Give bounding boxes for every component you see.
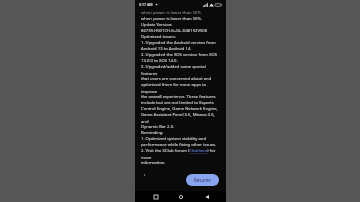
staticText: Game Assistant Panel 3.6, Mirana 3.6, an… (141, 112, 220, 124)
staticText: 3. Upgraded/added some special features (141, 64, 220, 76)
staticText: Optimized issues: (141, 34, 176, 40)
staticText: when power is lower than 50%. (141, 10, 203, 16)
staticText: Control Engine, Game Network Engine, (141, 106, 218, 112)
button[interactable]: Resume (186, 174, 219, 186)
staticText: the overall experience. These features (141, 94, 216, 100)
button[interactable]: Recent apps (150, 191, 161, 202)
button[interactable]: Back (201, 191, 212, 202)
staticText: include but are not limited to Esports (141, 100, 214, 106)
staticText: 1. Upgraded the Android version from (141, 40, 216, 46)
staticText: 13.0.0 to XOS 14.0. (141, 58, 178, 64)
staticText: that users are concerned about and (141, 76, 212, 82)
staticText: 1. Optimized system stability and (141, 136, 206, 142)
staticText: Android 13 to Android 14. (141, 46, 192, 52)
staticText: Dynamic Bar 2.0. (141, 124, 175, 130)
staticText: 2. Visit the XClub forum (Clickhere) for… (141, 148, 220, 160)
staticText: Resume (194, 177, 211, 183)
staticText: information. (141, 160, 166, 166)
staticText: Update Version: (141, 22, 173, 28)
staticText: when power is lower than 50%. (141, 16, 203, 22)
button[interactable]: Home (175, 191, 186, 202)
staticText: optimized them for more apps to improve (141, 82, 220, 94)
staticText: 86739.H501CH.6+GL.D48192V508 (141, 28, 208, 34)
staticText: Reminding: (141, 130, 164, 136)
staticText: performance while fixing other issues. (141, 142, 217, 148)
staticText: 2. Upgraded the ХОЅ version from XOS (141, 52, 217, 58)
staticText: 5:17 AM (139, 2, 153, 7)
